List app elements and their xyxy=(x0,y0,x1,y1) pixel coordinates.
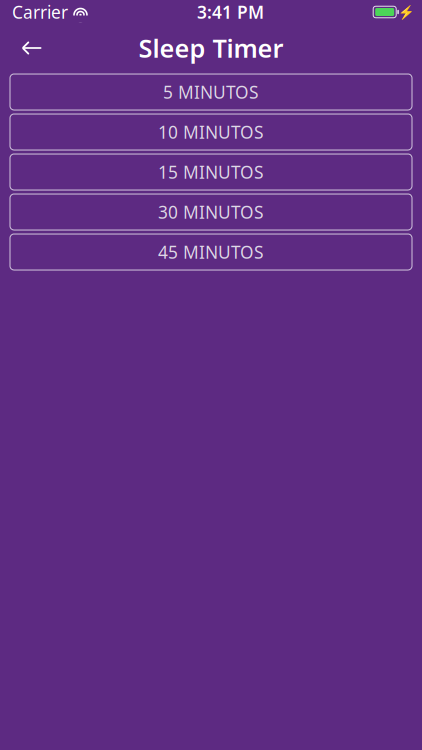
button[interactable]: Back xyxy=(10,26,54,70)
button[interactable]: 10 MINUTOS xyxy=(10,114,412,150)
staticText: 30 MINUTOS xyxy=(158,200,264,223)
button[interactable]: 45 MINUTOS xyxy=(10,234,412,270)
button[interactable]: 5 MINUTOS xyxy=(10,74,412,110)
staticText: ⚡ xyxy=(397,4,414,20)
staticText: 5 MINUTOS xyxy=(163,80,259,103)
staticText: 3:41 PM xyxy=(197,0,264,23)
button[interactable]: 15 MINUTOS xyxy=(10,154,412,190)
staticText: Sleep Timer xyxy=(138,31,283,65)
staticText: Carrier xyxy=(12,0,68,23)
staticText: 45 MINUTOS xyxy=(158,240,264,263)
staticText: 15 MINUTOS xyxy=(158,160,264,183)
button[interactable]: 30 MINUTOS xyxy=(10,194,412,230)
staticText: 10 MINUTOS xyxy=(158,120,264,143)
